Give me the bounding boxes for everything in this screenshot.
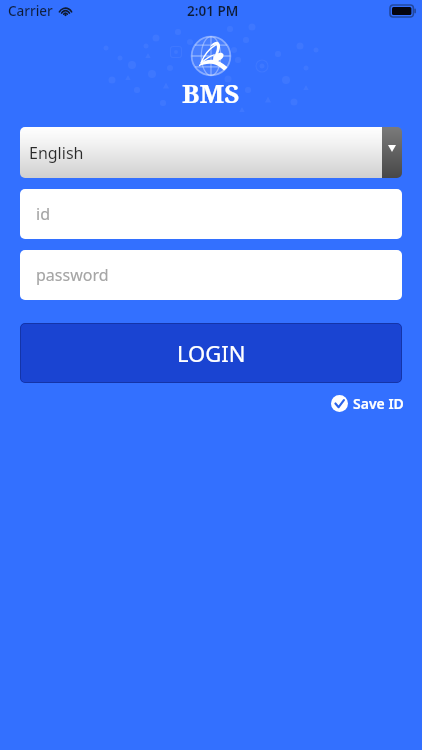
staticText: LOGIN — [177, 338, 246, 368]
staticText: Carrier — [8, 2, 53, 20]
button[interactable]: id — [20, 189, 402, 239]
staticText: 2:01 PM — [187, 2, 239, 20]
staticText: BMS — [182, 75, 240, 110]
button[interactable]: Save ID — [331, 394, 404, 413]
button[interactable]: LOGIN — [20, 323, 402, 383]
staticText: Save ID — [353, 394, 404, 413]
staticText: id — [36, 203, 50, 225]
staticText: password — [36, 264, 109, 286]
button[interactable]: English — [20, 127, 402, 178]
staticText: English — [29, 142, 84, 164]
button[interactable]: password — [20, 250, 402, 300]
button[interactable]: Open language list — [382, 127, 402, 178]
